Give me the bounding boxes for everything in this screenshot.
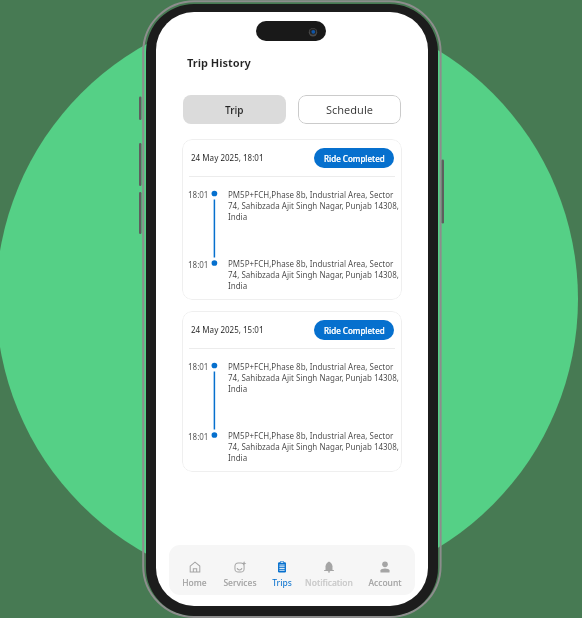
button[interactable]: Ride Completed (314, 320, 394, 340)
staticText: Ride Completed (324, 153, 385, 164)
staticText: Notification (305, 577, 353, 589)
button[interactable]: Services tab (214, 545, 266, 595)
button[interactable]: 24 May 2025, 15:01 (182, 311, 402, 472)
button[interactable]: Trip (183, 95, 286, 124)
staticText: 18:01 (188, 361, 209, 372)
staticText: PM5P+FCH,Phase 8b, Industrial Area, Sect… (228, 258, 401, 291)
button[interactable]: Account tab (359, 545, 411, 595)
button[interactable]: Trips tab (256, 545, 308, 595)
staticText: 18:01 (188, 431, 209, 442)
staticText: PM5P+FCH,Phase 8b, Industrial Area, Sect… (228, 189, 401, 222)
staticText: PM5P+FCH,Phase 8b, Industrial Area, Sect… (228, 361, 401, 394)
button[interactable]: Schedule (298, 95, 401, 124)
button[interactable]: 24 May 2025, 18:01 (182, 139, 402, 300)
button[interactable]: Notification tab (303, 545, 355, 595)
staticText: 24 May 2025, 18:01 (191, 152, 264, 163)
staticText: Home (182, 577, 207, 589)
staticText: PM5P+FCH,Phase 8b, Industrial Area, Sect… (228, 430, 401, 463)
button[interactable]: Home tab (169, 545, 220, 595)
staticText: Schedule (326, 102, 373, 117)
button[interactable]: Ride Completed (314, 148, 394, 168)
staticText: 24 May 2025, 15:01 (191, 324, 264, 335)
staticText: Trips (272, 577, 292, 589)
staticText: Account (368, 577, 402, 589)
staticText: 18:01 (188, 189, 209, 200)
staticText: 18:01 (188, 259, 209, 270)
staticText: Trip History (187, 55, 251, 70)
staticText: Trip (225, 103, 244, 117)
staticText: Ride Completed (324, 325, 385, 336)
staticText: Services (223, 577, 257, 589)
